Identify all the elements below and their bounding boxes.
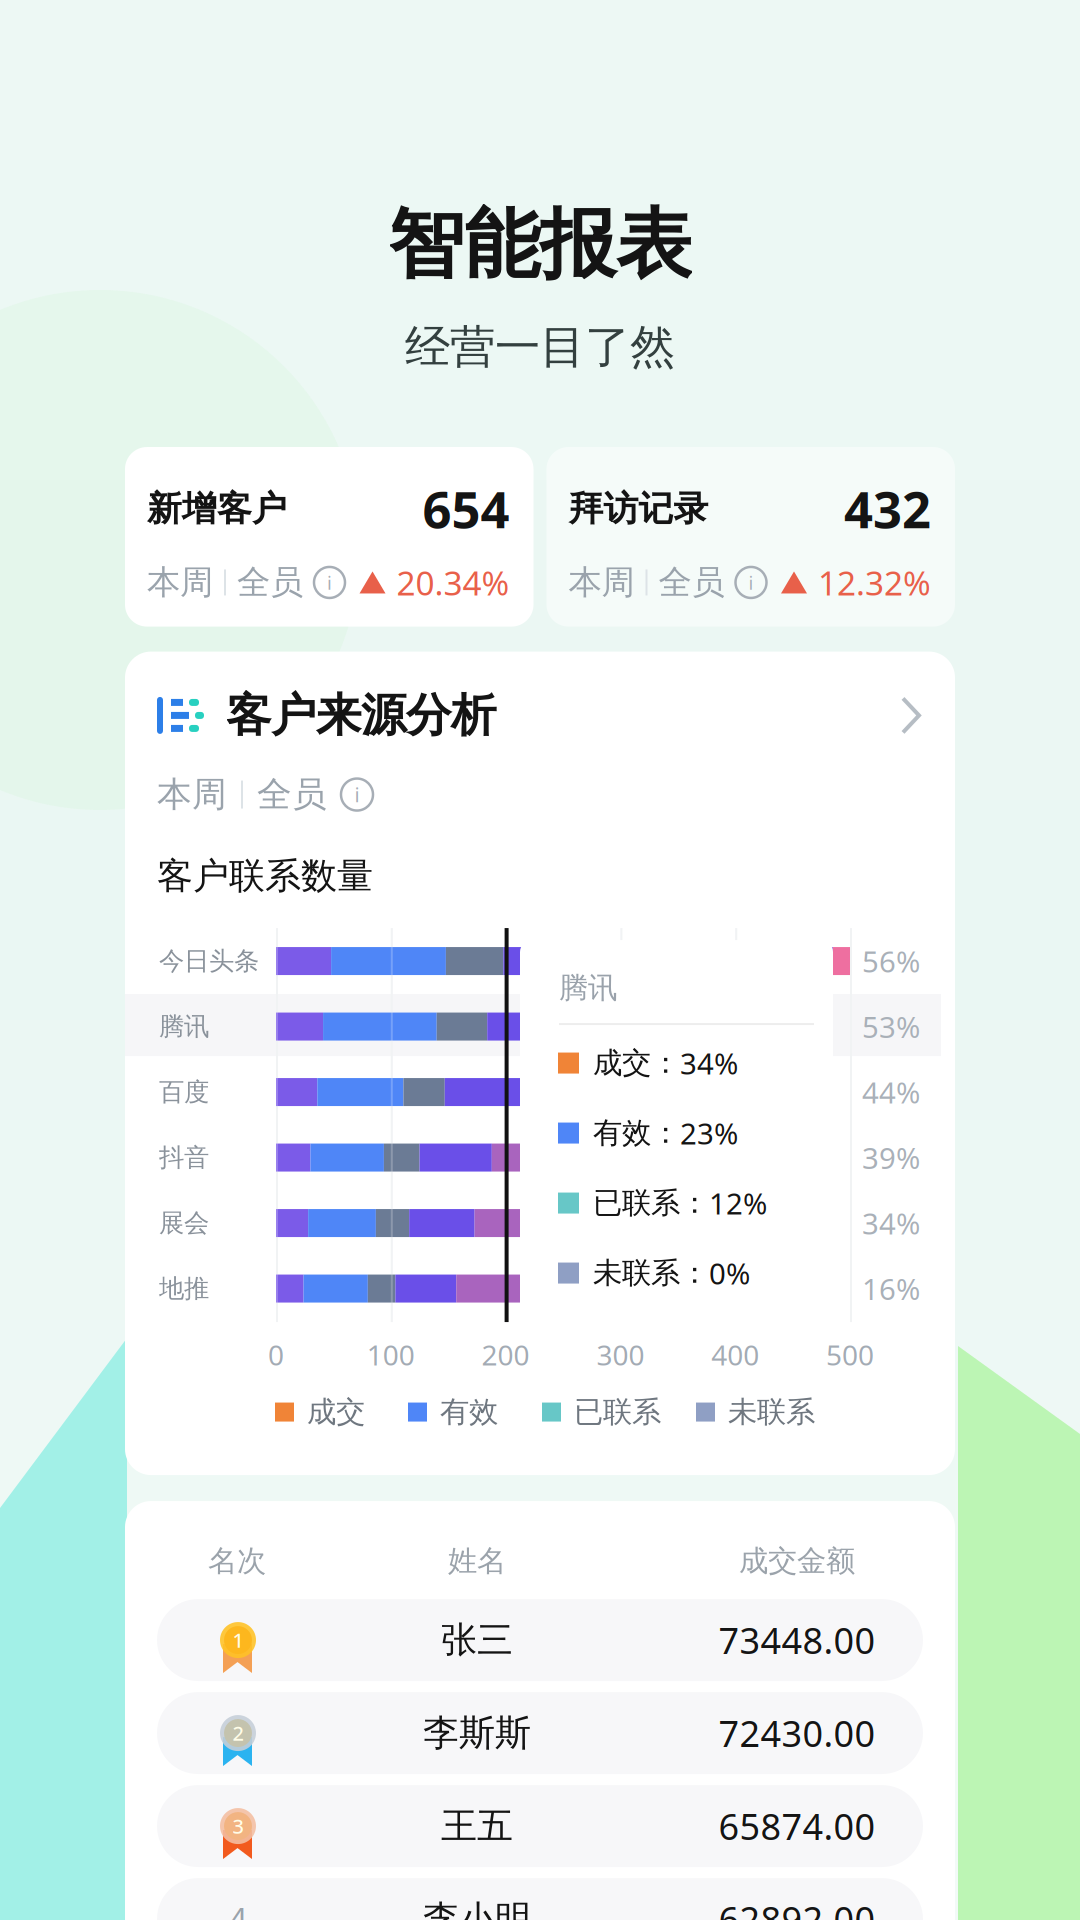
staticText: 全员 [257, 773, 327, 816]
staticText: 智能报表 [388, 198, 692, 291]
button[interactable]: 2 [157, 1692, 923, 1774]
staticText: 王五 [441, 1804, 513, 1848]
button[interactable]: 新增客户 [125, 447, 533, 626]
staticText: 3 [232, 1813, 243, 1839]
staticText: 百度 [159, 1076, 209, 1108]
staticText: 39% [862, 1138, 920, 1177]
staticText: 34% [862, 1204, 920, 1243]
staticText: 未联系： [593, 1255, 709, 1291]
staticText: 有效 [440, 1394, 498, 1430]
button[interactable]: 4 [157, 1878, 923, 1920]
staticText: 客户来源分析 [226, 688, 496, 743]
staticText: 本周 [147, 562, 213, 603]
staticText: 2 [232, 1720, 243, 1746]
staticText: 地推 [159, 1273, 209, 1304]
staticText: 今日头条 [159, 945, 259, 977]
staticText: 已联系 [574, 1394, 661, 1430]
staticText: 成交： [593, 1045, 680, 1081]
staticText: 53% [862, 1007, 920, 1046]
staticText: 432 [844, 475, 931, 542]
staticText: 拜访记录 [568, 487, 708, 530]
button[interactable]: 拜访记录 [546, 447, 955, 626]
staticText: 展会 [159, 1207, 209, 1239]
staticText: 100 [367, 1336, 415, 1373]
staticText: 本周 [568, 562, 634, 603]
staticText: 12% [709, 1184, 767, 1223]
staticText: 未联系 [728, 1394, 815, 1430]
staticText: 12.32% [818, 560, 931, 605]
staticText: 经营一目了然 [405, 319, 675, 375]
staticText: 客户联系数量 [157, 854, 373, 898]
staticText: 名次 [208, 1543, 266, 1579]
staticText: 李斯斯 [423, 1711, 531, 1755]
staticText: 成交 [307, 1394, 365, 1430]
staticText: 73448.00 [718, 1616, 875, 1664]
staticText: 0% [709, 1254, 750, 1293]
staticText: 44% [862, 1073, 920, 1112]
staticText: 全员 [237, 562, 303, 603]
staticText: 62892.00 [718, 1895, 875, 1920]
staticText: i [327, 570, 332, 595]
staticText: 姓名 [448, 1543, 506, 1579]
staticText: 500 [826, 1336, 874, 1373]
staticText: 有效： [593, 1115, 680, 1151]
staticText: i [748, 570, 753, 595]
staticText: 抖音 [159, 1142, 209, 1173]
staticText: 1 [232, 1627, 243, 1653]
staticText: 本周 [157, 773, 227, 816]
staticText: i [354, 781, 359, 808]
staticText: 34% [680, 1044, 738, 1083]
staticText: 4 [229, 1898, 247, 1920]
staticText: 全员 [658, 562, 724, 603]
staticText: 已联系： [593, 1185, 709, 1221]
staticText: 65874.00 [718, 1802, 875, 1850]
staticText: 72430.00 [718, 1709, 875, 1757]
button[interactable]: 1 [157, 1599, 923, 1681]
staticText: 16% [862, 1269, 920, 1308]
button[interactable]: 3 [157, 1785, 923, 1867]
staticText: 56% [862, 942, 920, 981]
button[interactable]: 客户来源分析 [157, 688, 923, 743]
staticText: 腾讯 [159, 1011, 209, 1042]
staticText: 0 [268, 1336, 284, 1373]
staticText: 新增客户 [147, 487, 287, 530]
staticText: 20.34% [396, 560, 509, 605]
staticText: 23% [680, 1114, 738, 1153]
staticText: 腾讯 [559, 970, 617, 1006]
staticText: 张三 [441, 1618, 513, 1662]
staticText: 200 [482, 1336, 530, 1373]
staticText: 成交金额 [739, 1543, 855, 1579]
staticText: 李小明 [423, 1897, 531, 1920]
staticText: 400 [711, 1336, 759, 1373]
staticText: 300 [596, 1336, 644, 1373]
staticText: 654 [422, 475, 509, 542]
